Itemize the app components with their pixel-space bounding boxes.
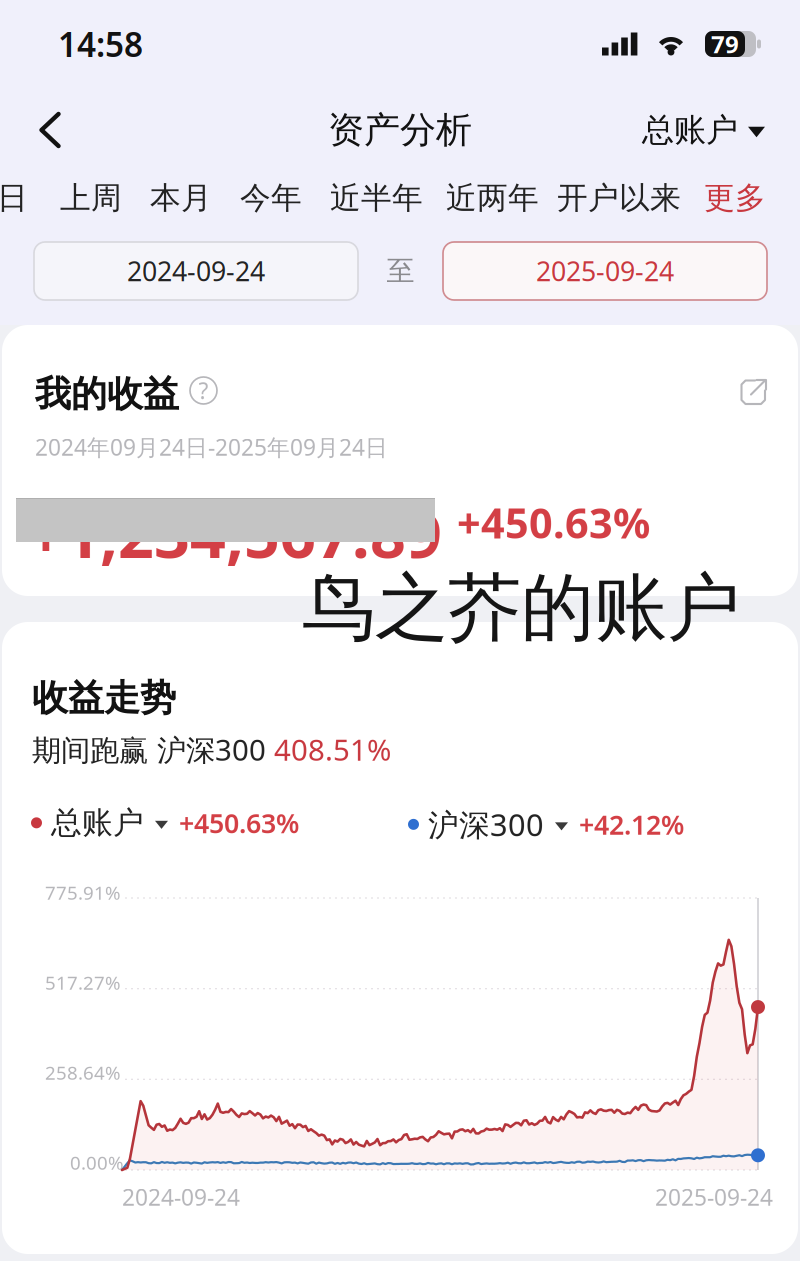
staticText: 收益走势 bbox=[32, 676, 176, 720]
staticText: 2024年09月24日-2025年09月24日 bbox=[35, 432, 388, 462]
staticText: 今年 bbox=[240, 179, 302, 217]
staticText: 2025-09-24 bbox=[655, 1182, 773, 1212]
button[interactable]: 开户以来 bbox=[547, 175, 691, 221]
staticText: 775.91% bbox=[45, 880, 121, 905]
staticText: 鸟之芥的账户 bbox=[302, 563, 740, 653]
staticText: ? bbox=[198, 375, 208, 405]
button[interactable]: 总账户 bbox=[31, 804, 299, 842]
button[interactable]: 今年 bbox=[230, 175, 312, 221]
button[interactable]: 分享 bbox=[740, 379, 767, 406]
staticText: +450.63% bbox=[457, 495, 650, 550]
staticText: 近两年 bbox=[446, 179, 539, 217]
staticText: 258.64% bbox=[45, 1060, 121, 1085]
staticText: 408.51% bbox=[274, 730, 391, 769]
staticText: 2024-09-24 bbox=[127, 253, 265, 289]
button[interactable]: 近两年 bbox=[436, 175, 549, 221]
button[interactable]: 更多 bbox=[694, 175, 776, 221]
staticText: 517.27% bbox=[45, 970, 121, 995]
staticText: 总账户 bbox=[642, 110, 738, 150]
button[interactable]: 日 bbox=[0, 175, 38, 221]
staticText: 79 bbox=[711, 28, 739, 60]
button[interactable]: 2025-09-24 bbox=[443, 242, 767, 300]
staticText: 资产分析 bbox=[328, 108, 472, 152]
staticText: 至 bbox=[386, 254, 414, 288]
staticText: +450.63% bbox=[179, 805, 299, 840]
staticText: 14:58 bbox=[58, 22, 143, 66]
button[interactable]: 上周 bbox=[50, 175, 132, 221]
staticText: 本月 bbox=[150, 179, 212, 217]
staticText: 我的收益 bbox=[35, 372, 179, 416]
button[interactable]: 总账户 bbox=[634, 102, 773, 158]
staticText: 0.00% bbox=[70, 1150, 124, 1175]
staticText: 日 bbox=[0, 179, 28, 217]
button[interactable]: 返回 bbox=[22, 102, 78, 158]
staticText: 2025-09-24 bbox=[536, 253, 674, 289]
staticText: 开户以来 bbox=[557, 179, 681, 217]
button[interactable]: 2024-09-24 bbox=[34, 242, 358, 300]
staticText: 近半年 bbox=[330, 179, 423, 217]
staticText: +42.12% bbox=[579, 807, 684, 842]
staticText: +1,234,567.89 bbox=[28, 492, 442, 575]
staticText: 沪深300 bbox=[428, 804, 544, 845]
staticText: 2024-09-24 bbox=[122, 1182, 240, 1212]
staticText: 总账户 bbox=[51, 804, 144, 842]
button[interactable]: 本月 bbox=[140, 175, 222, 221]
staticText: 更多 bbox=[704, 179, 766, 217]
button[interactable]: 沪深300 bbox=[408, 804, 684, 845]
staticText: 上周 bbox=[60, 179, 122, 217]
staticText: 期间跑赢 沪深300 bbox=[32, 730, 274, 769]
button[interactable]: 近半年 bbox=[320, 175, 433, 221]
